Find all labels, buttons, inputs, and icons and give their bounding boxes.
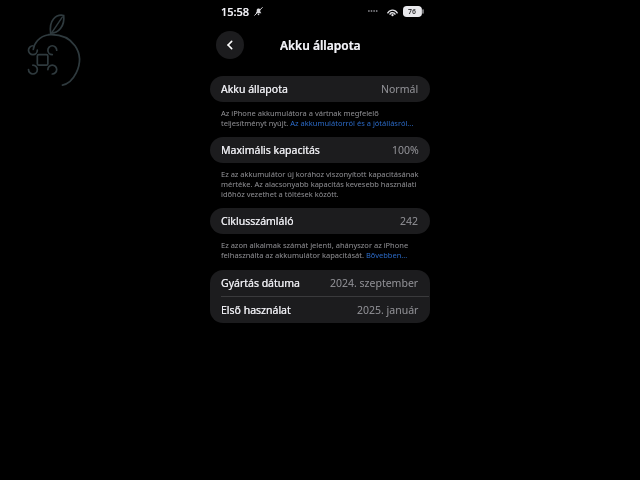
button[interactable]: Ciklusszámláló bbox=[210, 208, 430, 234]
staticText: Akku állapota bbox=[280, 37, 361, 53]
staticText: 15:58 bbox=[221, 4, 250, 19]
staticText: Maximális kapacitás bbox=[221, 143, 320, 157]
button[interactable]: Vissza bbox=[216, 31, 244, 59]
button[interactable]: Akku állapota bbox=[210, 76, 430, 102]
button[interactable]: Maximális kapacitás bbox=[210, 137, 430, 163]
staticText: 2024. szeptember bbox=[330, 276, 419, 290]
staticText: 76 bbox=[408, 7, 417, 17]
staticText: Ez azon alkalmak számát jelenti, ahánysz… bbox=[221, 240, 420, 260]
staticText: Ciklusszámláló bbox=[221, 214, 294, 228]
staticText: 100% bbox=[392, 143, 419, 157]
staticText: Ez az akkumulátor új korához viszonyítot… bbox=[221, 169, 420, 199]
staticText: Első használat bbox=[221, 303, 291, 317]
staticText: 242 bbox=[400, 214, 419, 228]
staticText: Az iPhone akkumulátora a vártnak megfele… bbox=[221, 108, 420, 128]
staticText: Akku állapota bbox=[221, 82, 288, 96]
staticText: Gyártás dátuma bbox=[221, 276, 301, 290]
staticText: 2025. január bbox=[357, 303, 419, 317]
staticText: Normál bbox=[381, 82, 419, 96]
